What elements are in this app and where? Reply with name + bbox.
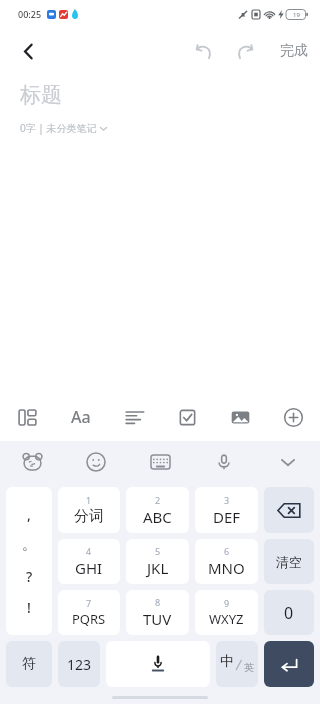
button[interactable]: Baidu keyboard [0, 441, 64, 483]
staticText: 3 [224, 494, 230, 506]
staticText: DEF [213, 507, 241, 527]
button[interactable]: Text style [54, 393, 108, 441]
staticText: 8 [155, 596, 161, 608]
button[interactable]: 123 [58, 641, 100, 687]
button[interactable]: Alignment [108, 393, 161, 441]
button[interactable]: 7 [58, 590, 120, 635]
staticText: 4 [86, 545, 92, 557]
staticText: 0字 | 未分类笔记 [20, 121, 97, 135]
button[interactable]: Templates [0, 393, 54, 441]
button[interactable]: 6 [195, 539, 258, 584]
button[interactable]: 0字 | 未分类笔记 [20, 121, 108, 135]
staticText: 5 [155, 545, 161, 557]
button[interactable]: , [6, 487, 52, 635]
staticText: ! [27, 598, 31, 617]
staticText: 0 [284, 602, 294, 624]
button[interactable]: Backspace [264, 487, 314, 533]
staticText: 完成 [280, 42, 308, 60]
button[interactable]: Voice input [192, 441, 256, 483]
button[interactable]: 8 [126, 590, 189, 635]
staticText: WXYZ [209, 610, 244, 628]
button[interactable]: 1 [58, 487, 120, 533]
staticText: 英 [244, 661, 254, 674]
staticText: ? [26, 567, 33, 586]
button[interactable]: 3 [195, 487, 258, 533]
staticText: ABC [143, 507, 172, 527]
staticText: , [27, 505, 31, 524]
staticText: 符 [22, 655, 36, 673]
button[interactable]: Undo [182, 30, 224, 72]
staticText: TUV [143, 609, 172, 629]
button[interactable]: Keyboard layout [128, 441, 192, 483]
staticText: 清空 [276, 554, 302, 570]
staticText: 中 [220, 653, 234, 671]
button[interactable]: 完成 [280, 31, 308, 71]
button[interactable]: 4 [58, 539, 120, 584]
button[interactable]: 2 [126, 487, 189, 533]
button[interactable]: 清空 [264, 539, 314, 584]
staticText: 123 [67, 655, 92, 674]
staticText: PQRS [72, 610, 106, 628]
staticText: 00:25 [18, 8, 42, 20]
staticText: 9 [224, 597, 230, 609]
button[interactable]: More [267, 393, 320, 441]
button[interactable]: Image [214, 393, 267, 441]
button[interactable]: Hide keyboard [256, 441, 320, 483]
button[interactable]: 5 [126, 539, 189, 584]
staticText: GHI [75, 558, 103, 578]
staticText: 。 [22, 536, 36, 554]
button[interactable]: Space, voice input [106, 641, 210, 687]
staticText: 2 [155, 494, 161, 506]
button[interactable]: 9 [195, 590, 258, 635]
staticText: 6 [224, 545, 230, 557]
button[interactable]: 符 [6, 641, 52, 687]
button[interactable]: Redo [224, 30, 266, 72]
button[interactable]: Back [8, 31, 48, 71]
staticText: 标题 [20, 82, 62, 108]
staticText: 7 [86, 597, 92, 609]
button[interactable]: Enter [264, 641, 314, 687]
staticText: Aa [71, 406, 91, 428]
staticText: 1 [86, 494, 92, 506]
button[interactable]: Emoji [64, 441, 128, 483]
staticText: JKL [147, 558, 169, 578]
button[interactable]: 0 [264, 590, 314, 635]
staticText: 分词 [74, 507, 104, 526]
staticText: MNO [208, 558, 245, 578]
button[interactable]: 中 [216, 641, 258, 687]
button[interactable]: Checklist [161, 393, 214, 441]
staticText: 19 [293, 11, 300, 19]
